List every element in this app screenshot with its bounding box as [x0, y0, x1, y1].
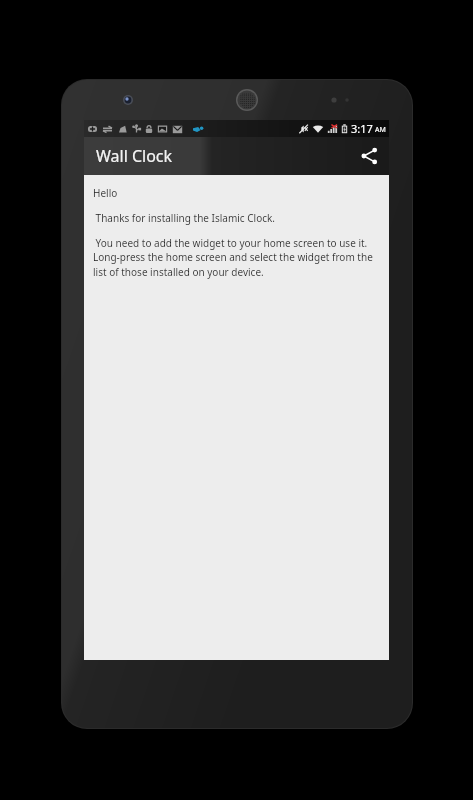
- staticText: 3:17: [351, 121, 373, 136]
- staticText: You need to add the widget to your home …: [93, 236, 380, 279]
- button[interactable]: Share: [351, 137, 389, 175]
- staticText: Wall Clock: [96, 145, 173, 167]
- staticText: Thanks for installing the Islamic Clock.: [93, 211, 276, 225]
- staticText: AM: [375, 125, 386, 135]
- staticText: Hello: [93, 186, 118, 200]
